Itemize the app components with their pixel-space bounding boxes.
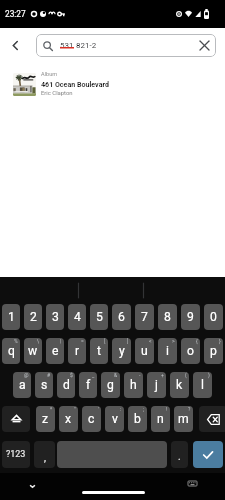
- button[interactable]: g: [101, 372, 120, 398]
- staticText: k: [176, 378, 183, 392]
- staticText: %: [14, 338, 18, 344]
- staticText: .: [178, 451, 181, 463]
- staticText: |: [60, 338, 62, 344]
- button[interactable]: h: [124, 372, 143, 398]
- staticText: 461 Ocean Boulevard: [41, 80, 109, 88]
- button[interactable]: n: [151, 406, 170, 432]
- staticText: m: [178, 412, 189, 426]
- staticText: \: [37, 338, 40, 344]
- button[interactable]: l: [193, 372, 212, 398]
- button[interactable]: 1: [2, 304, 20, 330]
- staticText: q: [8, 344, 15, 358]
- button[interactable]: k: [170, 372, 189, 398]
- staticText: ': [98, 406, 99, 412]
- staticText: Album: [41, 71, 58, 78]
- staticText: ,: [44, 452, 46, 464]
- staticText: 6: [118, 310, 125, 324]
- button[interactable]: e: [46, 338, 64, 364]
- button[interactable]: Switch keyboard: [183, 474, 201, 492]
- button[interactable]: i: [158, 338, 177, 364]
- staticText: :: [120, 406, 122, 412]
- staticText: ": [74, 406, 76, 412]
- staticText: [: [104, 338, 106, 344]
- staticText: -: [139, 372, 141, 378]
- staticText: y: [119, 344, 125, 358]
- button[interactable]: 531: [36, 34, 216, 57]
- staticText: 23:27: [5, 9, 26, 19]
- staticText: ?123: [6, 449, 26, 460]
- staticText: e: [52, 344, 59, 358]
- staticText: 5: [96, 310, 103, 324]
- button[interactable]: ,: [34, 441, 55, 468]
- button[interactable]: r: [68, 338, 86, 364]
- staticText: s: [41, 378, 48, 392]
- staticText: &: [114, 372, 118, 378]
- staticText: 0: [210, 310, 217, 324]
- staticText: _: [92, 372, 95, 378]
- staticText: d: [63, 378, 70, 392]
- button[interactable]: ?123: [2, 441, 30, 468]
- button[interactable]: Clear search: [196, 37, 213, 54]
- staticText: f: [86, 378, 91, 392]
- button[interactable]: o: [181, 338, 200, 364]
- button[interactable]: x: [59, 406, 78, 432]
- button[interactable]: Album: [0, 64, 225, 104]
- button[interactable]: 6: [112, 304, 131, 330]
- button[interactable]: .: [171, 441, 188, 468]
- staticText: c: [88, 412, 95, 426]
- button[interactable]: m: [174, 406, 193, 432]
- button[interactable]: 3: [46, 304, 64, 330]
- button[interactable]: w: [24, 338, 42, 364]
- button[interactable]: b: [128, 406, 147, 432]
- staticText: ): [208, 372, 210, 378]
- staticText: ]: [127, 338, 129, 344]
- staticText: +: [161, 372, 164, 378]
- staticText: ;: [143, 406, 145, 412]
- staticText: p: [210, 344, 217, 358]
- button[interactable]: f: [79, 372, 97, 398]
- button[interactable]: 2: [24, 304, 42, 330]
- button[interactable]: 9: [181, 304, 200, 330]
- button[interactable]: Shift: [2, 406, 30, 432]
- staticText: u: [141, 344, 148, 358]
- staticText: <: [149, 338, 152, 344]
- button[interactable]: q: [2, 338, 20, 364]
- button[interactable]: a: [13, 372, 31, 398]
- button[interactable]: 8: [158, 304, 177, 330]
- staticText: }: [219, 338, 221, 344]
- button[interactable]: Back: [5, 35, 26, 56]
- staticText: (: [185, 372, 187, 378]
- button[interactable]: v: [105, 406, 124, 432]
- button[interactable]: 0: [204, 304, 223, 330]
- staticText: 1: [8, 310, 15, 324]
- button[interactable]: c: [82, 406, 101, 432]
- button[interactable]: y: [112, 338, 131, 364]
- staticText: 821-2: [74, 41, 97, 50]
- staticText: !: [166, 406, 168, 412]
- button[interactable]: p: [204, 338, 223, 364]
- button[interactable]: z: [36, 406, 55, 432]
- staticText: 3: [52, 310, 59, 324]
- button[interactable]: Hide keyboard: [23, 477, 42, 496]
- button[interactable]: 7: [135, 304, 154, 330]
- button[interactable]: Delete: [199, 406, 225, 432]
- button[interactable]: Enter: [193, 441, 223, 468]
- staticText: @: [24, 372, 29, 378]
- staticText: 4: [74, 310, 81, 324]
- button[interactable]: d: [57, 372, 75, 398]
- button[interactable]: t: [90, 338, 108, 364]
- staticText: l: [201, 378, 204, 392]
- staticText: z: [42, 412, 49, 426]
- button[interactable]: u: [135, 338, 154, 364]
- staticText: {: [196, 338, 198, 344]
- staticText: =: [81, 338, 84, 344]
- staticText: >: [172, 338, 175, 344]
- button[interactable]: Space: [57, 441, 167, 468]
- staticText: h: [130, 378, 137, 392]
- button[interactable]: s: [35, 372, 53, 398]
- staticText: g: [107, 378, 114, 392]
- button[interactable]: 5: [90, 304, 108, 330]
- staticText: 2: [30, 310, 37, 324]
- button[interactable]: 4: [68, 304, 86, 330]
- button[interactable]: j: [147, 372, 166, 398]
